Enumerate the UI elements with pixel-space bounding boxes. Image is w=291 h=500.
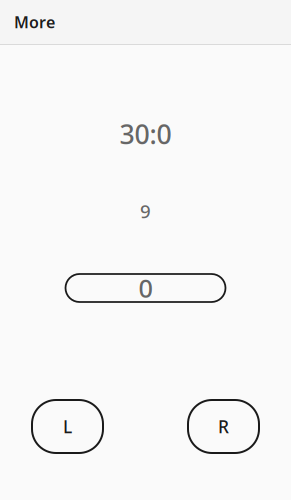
button[interactable]: 0 (65, 274, 225, 302)
staticText: 9 (140, 199, 151, 223)
button[interactable]: R (188, 400, 259, 453)
staticText: 30:0 (119, 116, 171, 152)
staticText: More (14, 11, 55, 33)
staticText: R (218, 415, 229, 438)
button[interactable]: L (32, 400, 103, 453)
staticText: L (63, 415, 72, 438)
staticText: 0 (138, 271, 152, 305)
